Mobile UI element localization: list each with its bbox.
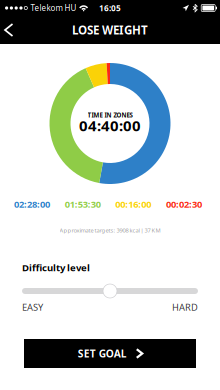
staticText: Difficulty level	[22, 261, 90, 274]
staticText: Telekom HU	[30, 3, 76, 13]
staticText: HARD	[172, 301, 198, 313]
staticText: 16:05	[99, 2, 121, 13]
staticText: 02:28:00	[14, 198, 50, 210]
staticText: 01:53:30	[65, 198, 101, 210]
button[interactable]: Back	[0, 17, 22, 43]
staticText: 04:40:00	[79, 116, 141, 135]
button[interactable]: SET GOAL	[24, 339, 196, 368]
staticText: 00:02:30	[166, 198, 202, 210]
staticText: 00:16:00	[115, 198, 151, 210]
staticText: LOSE WEIGHT	[72, 22, 148, 38]
staticText: EASY	[22, 301, 43, 313]
staticText: SET GOAL	[78, 347, 127, 360]
staticText: Approximate targets: 3908 kcal | 37 KM	[59, 226, 160, 234]
staticText: TIME IN ZONES	[87, 111, 132, 119]
